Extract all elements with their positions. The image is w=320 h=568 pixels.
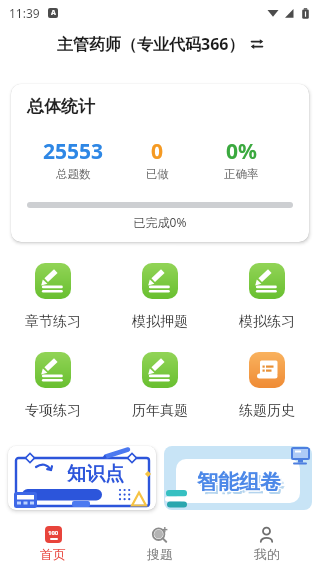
staticText: 章节练习	[25, 313, 81, 331]
staticText: 智能组卷	[197, 470, 281, 496]
staticText: 已完成0%	[27, 214, 293, 230]
button[interactable]: 模拟押题	[106, 263, 213, 331]
staticText: A	[51, 8, 56, 18]
staticText: 100	[48, 529, 59, 537]
staticText: 总题数	[56, 167, 91, 181]
staticText: 模拟练习	[239, 313, 295, 331]
button[interactable]: 搜题	[106, 518, 213, 568]
staticText: 25553	[43, 137, 104, 166]
button[interactable]: 知识点	[8, 446, 156, 510]
button[interactable]: 历年真题	[106, 352, 213, 420]
staticText: 搜题	[147, 546, 173, 562]
button[interactable]: 我的	[213, 518, 320, 568]
staticText: 智能组卷	[196, 469, 280, 495]
button[interactable]: 专项练习	[0, 352, 106, 420]
staticText: 知识点	[67, 462, 124, 486]
staticText: 主管药师（专业代码366）	[57, 33, 245, 55]
staticText: 0%	[226, 137, 257, 166]
staticText: 11:39	[9, 5, 40, 21]
staticText: 智能组卷	[197, 469, 281, 495]
staticText: 总体统计	[27, 96, 95, 117]
button[interactable]: 主管药师（专业代码366）	[57, 33, 264, 55]
staticText: 练题历史	[239, 402, 295, 420]
staticText: 首页	[40, 546, 66, 562]
button[interactable]: 智能组卷	[164, 446, 312, 510]
staticText: 0	[151, 137, 164, 166]
button[interactable]: 练题历史	[213, 352, 320, 420]
staticText: 智能组卷	[200, 472, 284, 498]
button[interactable]: 模拟练习	[213, 263, 320, 331]
staticText: 智能组卷	[196, 470, 280, 496]
staticText: 智能组卷	[198, 470, 282, 496]
staticText: 模拟押题	[132, 313, 188, 331]
button[interactable]: 100	[0, 518, 106, 568]
staticText: 智能组卷	[196, 468, 280, 494]
staticText: 智能组卷	[198, 468, 282, 494]
staticText: 已做	[146, 167, 169, 181]
button[interactable]: 章节练习	[0, 263, 106, 331]
staticText: 智能组卷	[198, 469, 282, 495]
staticText: 历年真题	[132, 402, 188, 420]
staticText: 专项练习	[25, 402, 81, 420]
staticText: 我的	[254, 546, 280, 562]
staticText: 正确率	[224, 167, 259, 181]
staticText: 智能组卷	[197, 468, 281, 494]
